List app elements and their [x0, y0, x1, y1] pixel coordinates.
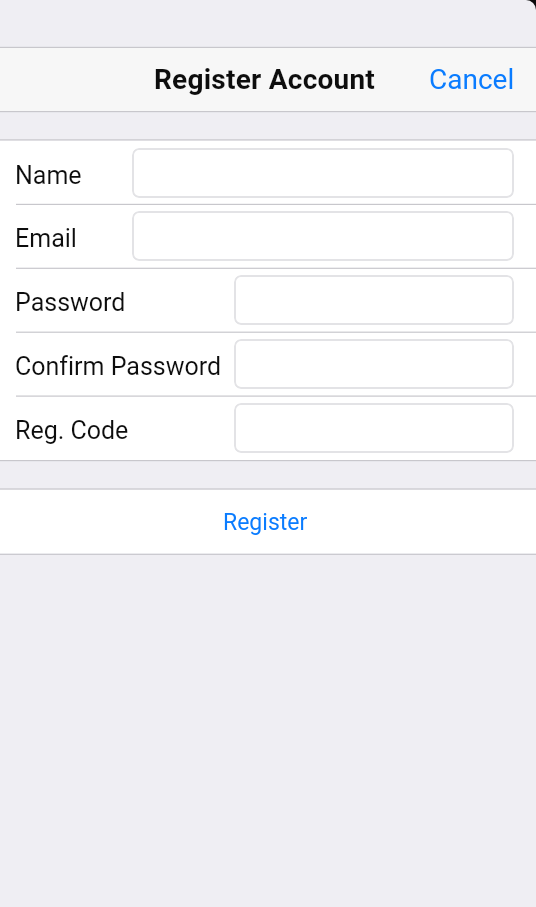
button[interactable]: Password: [0, 268, 536, 332]
staticText: Reg. Code: [15, 416, 129, 445]
button[interactable]: Register: [0, 490, 536, 554]
staticText: Register Account: [154, 63, 376, 96]
button[interactable]: Conf‌irm Password: [0, 332, 536, 396]
button[interactable]: Cancel: [403, 49, 536, 110]
staticText: Conf‌irm Password: [15, 352, 222, 381]
staticText: Cancel: [429, 63, 515, 96]
button[interactable]: Email: [0, 204, 536, 268]
staticText: Email: [15, 224, 77, 253]
staticText: Name: [15, 161, 82, 190]
staticText: Register: [223, 509, 308, 536]
staticText: Password: [15, 288, 126, 317]
button[interactable]: Name: [0, 141, 536, 205]
button[interactable]: Reg. Code: [0, 396, 536, 460]
